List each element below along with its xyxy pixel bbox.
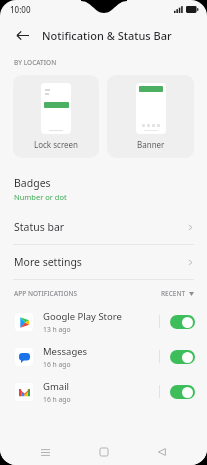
button[interactable]: Google Play Store: [0, 304, 207, 339]
staticText: Number or dot: [14, 192, 67, 202]
button[interactable]: Messages: [0, 339, 207, 374]
button[interactable]: More settings: [0, 245, 207, 279]
button[interactable]: Gmail: [0, 374, 207, 409]
staticText: 16 h ago: [43, 395, 71, 404]
staticText: Gmail: [43, 380, 70, 393]
button[interactable]: Back: [12, 25, 32, 45]
staticText: Banner: [137, 139, 165, 150]
staticText: 16 h ago: [43, 360, 71, 369]
button[interactable]: Toggle Google Play Store: [170, 315, 195, 329]
staticText: 10:00: [10, 4, 31, 15]
button[interactable]: Recents: [32, 439, 58, 465]
staticText: RECENT: [161, 289, 186, 298]
staticText: Lock screen: [34, 139, 79, 150]
staticText: More settings: [14, 255, 187, 269]
staticText: Notification & Status Bar: [42, 28, 172, 43]
button[interactable]: Lock screen: [13, 75, 99, 158]
button[interactable]: Back: [149, 439, 175, 465]
staticText: BY LOCATION: [14, 58, 57, 67]
staticText: 13 h ago: [43, 325, 71, 334]
button[interactable]: Banner: [107, 75, 194, 158]
button[interactable]: Toggle Gmail: [170, 385, 195, 399]
button[interactable]: RECENT: [161, 289, 194, 298]
button[interactable]: Badges: [0, 172, 207, 210]
staticText: Messages: [43, 345, 88, 358]
button[interactable]: Toggle Messages: [170, 350, 195, 364]
staticText: APP NOTIFICATIONS: [14, 289, 161, 298]
button[interactable]: Status bar: [0, 210, 207, 244]
staticText: Status bar: [14, 220, 187, 234]
button[interactable]: Home: [91, 439, 117, 465]
staticText: Badges: [14, 176, 51, 190]
staticText: Google Play Store: [43, 310, 122, 323]
